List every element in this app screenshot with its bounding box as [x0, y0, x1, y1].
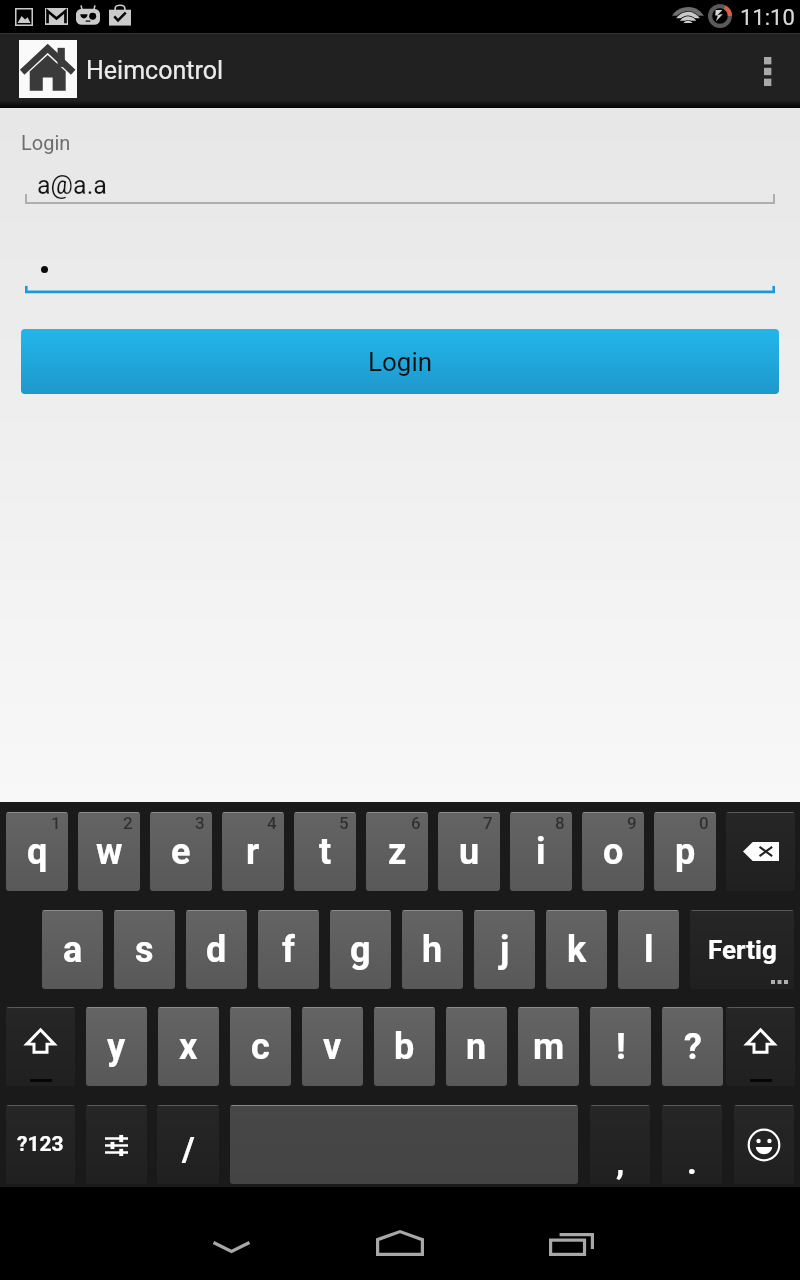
staticText: y: [107, 1026, 126, 1068]
button[interactable]: More options: [736, 34, 800, 108]
button[interactable]: t: [294, 812, 356, 891]
button[interactable]: Keyboard settings: [86, 1105, 147, 1184]
button[interactable]: Shift: [726, 1007, 795, 1086]
button[interactable]: Emoji: [734, 1105, 794, 1184]
staticText: 11:10: [740, 5, 795, 31]
button[interactable]: ?: [662, 1007, 723, 1086]
staticText: i: [536, 831, 546, 873]
staticText: m: [533, 1026, 565, 1068]
button[interactable]: h: [402, 910, 463, 989]
staticText: 9: [627, 813, 637, 833]
button[interactable]: Hide keyboard: [138, 1187, 323, 1280]
button[interactable]: w: [78, 812, 140, 891]
button[interactable]: d: [186, 910, 247, 989]
staticText: a: [63, 929, 83, 971]
staticText: .: [687, 1142, 697, 1182]
button[interactable]: m: [518, 1007, 579, 1086]
staticText: a@a.a: [37, 171, 107, 200]
staticText: /: [182, 1129, 195, 1169]
button[interactable]: o: [582, 812, 644, 891]
button[interactable]: l: [618, 910, 679, 989]
button[interactable]: f: [258, 910, 319, 989]
button[interactable]: App icon: [19, 40, 77, 98]
button[interactable]: n: [446, 1007, 507, 1086]
staticText: l: [644, 929, 654, 971]
button[interactable]: q: [6, 812, 68, 891]
button[interactable]: c: [230, 1007, 291, 1086]
staticText: 8: [555, 813, 565, 833]
button[interactable]: b: [374, 1007, 435, 1086]
staticText: p: [675, 831, 696, 873]
button[interactable]: r: [222, 812, 284, 891]
button[interactable]: x: [158, 1007, 219, 1086]
button[interactable]: v: [302, 1007, 363, 1086]
staticText: z: [388, 831, 407, 873]
staticText: n: [466, 1026, 487, 1068]
button[interactable]: !: [590, 1007, 651, 1086]
button[interactable]: k: [546, 910, 607, 989]
staticText: r: [246, 831, 260, 873]
staticText: h: [422, 929, 443, 971]
button[interactable]: ,: [590, 1105, 650, 1184]
staticText: u: [459, 831, 480, 873]
staticText: e: [171, 831, 191, 873]
staticText: v: [323, 1026, 342, 1068]
staticText: s: [135, 929, 154, 971]
button[interactable]: ?123: [6, 1105, 75, 1184]
staticText: x: [179, 1026, 198, 1068]
button[interactable]: Backspace: [726, 812, 795, 891]
button[interactable]: z: [366, 812, 428, 891]
staticText: ?: [684, 1026, 702, 1068]
button[interactable]: a@a.a: [25, 165, 775, 205]
other: Backspace: [743, 842, 779, 861]
button[interactable]: p: [654, 812, 716, 891]
staticText: c: [251, 1026, 270, 1068]
button[interactable]: e: [150, 812, 212, 891]
button[interactable]: y: [86, 1007, 147, 1086]
staticText: 0: [699, 813, 709, 833]
button[interactable]: u: [438, 812, 500, 891]
staticText: d: [206, 929, 227, 971]
staticText: Fertig: [708, 935, 777, 965]
staticText: Heimcontrol: [86, 56, 223, 85]
staticText: 2: [123, 813, 133, 833]
button[interactable]: a: [42, 910, 103, 989]
staticText: o: [603, 831, 624, 873]
staticText: ,: [616, 1142, 625, 1182]
button[interactable]: Shift: [6, 1007, 75, 1086]
staticText: q: [27, 831, 48, 873]
staticText: 7: [483, 813, 493, 833]
staticText: b: [394, 1026, 415, 1068]
staticText: 4: [267, 813, 277, 833]
button[interactable]: s: [114, 910, 175, 989]
button[interactable]: Home: [307, 1187, 492, 1280]
other: Shift: [25, 1028, 56, 1054]
staticText: g: [350, 929, 371, 971]
button[interactable]: [25, 253, 775, 293]
button[interactable]: Recent apps: [477, 1187, 662, 1280]
staticText: w: [96, 831, 123, 873]
button[interactable]: g: [330, 910, 391, 989]
staticText: !: [616, 1026, 626, 1068]
staticText: 1: [51, 813, 61, 833]
button[interactable]: /: [157, 1105, 219, 1184]
button[interactable]: i: [510, 812, 572, 891]
staticText: k: [567, 929, 587, 971]
button[interactable]: Login: [21, 329, 779, 394]
staticText: Login: [368, 347, 433, 377]
button[interactable]: j: [474, 910, 535, 989]
staticText: 5: [339, 813, 349, 833]
staticText: t: [319, 831, 332, 873]
staticText: Login: [21, 131, 71, 154]
button[interactable]: [230, 1105, 578, 1184]
other: Emoji: [747, 1128, 781, 1162]
staticText: ?123: [17, 1132, 64, 1157]
button[interactable]: .: [662, 1105, 722, 1184]
other: Keyboard settings: [105, 1133, 128, 1157]
staticText: 6: [411, 813, 421, 833]
button[interactable]: Fertig: [690, 910, 794, 989]
staticText: j: [500, 929, 510, 971]
staticText: f: [282, 929, 295, 971]
staticText: 3: [195, 813, 205, 833]
other: Shift: [745, 1028, 776, 1054]
